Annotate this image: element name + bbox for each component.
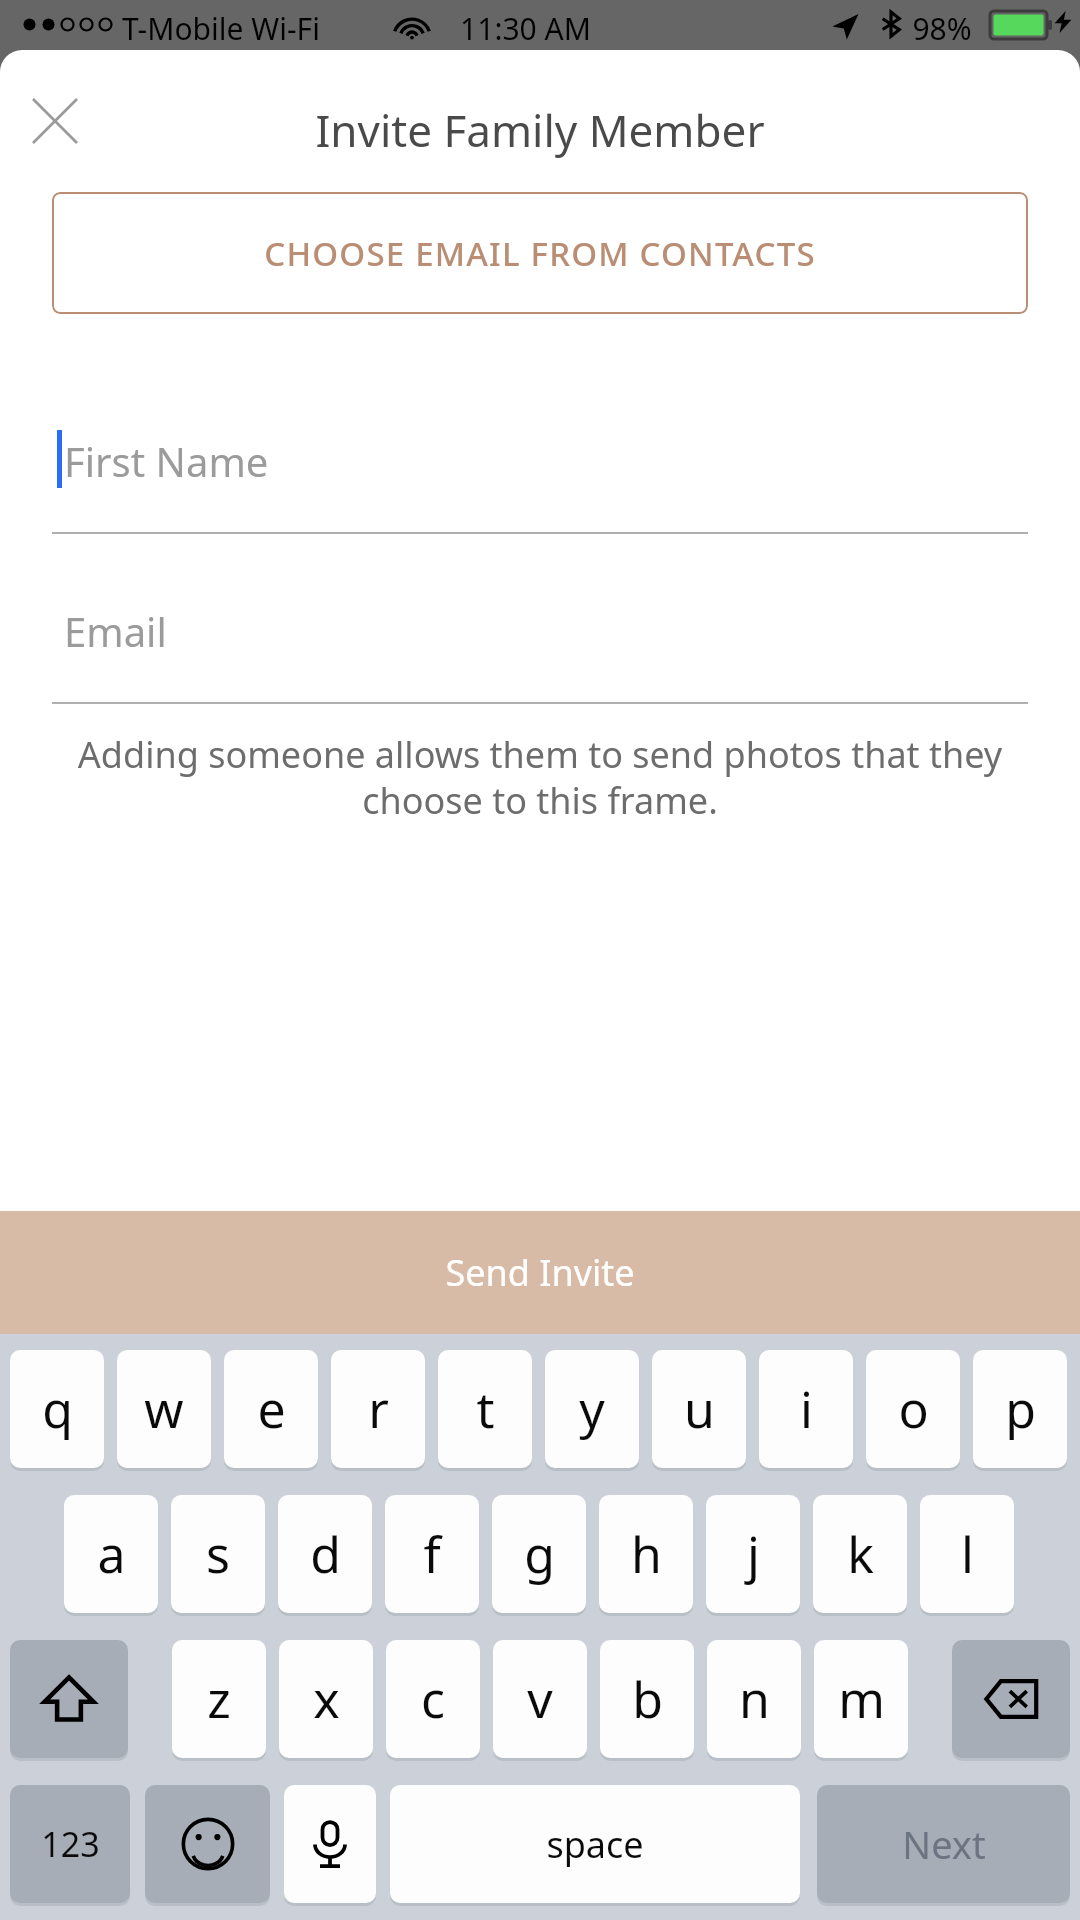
staticText: Invite Family Member xyxy=(315,100,765,160)
staticText: j xyxy=(747,1520,760,1588)
staticText: T-Mobile Wi-Fi xyxy=(122,8,320,49)
button[interactable]: z xyxy=(172,1640,266,1758)
staticText: r xyxy=(368,1375,389,1443)
staticText: e xyxy=(257,1375,286,1443)
staticText: w xyxy=(144,1375,184,1443)
button[interactable]: o xyxy=(866,1350,960,1468)
staticText: l xyxy=(961,1520,974,1588)
staticText: n xyxy=(739,1665,770,1733)
staticText: Email xyxy=(64,604,167,658)
button[interactable]: First Name xyxy=(52,422,1028,534)
staticText: d xyxy=(310,1520,341,1588)
button[interactable]: f xyxy=(385,1495,479,1613)
button[interactable]: CHOOSE EMAIL FROM CONTACTS xyxy=(52,192,1028,314)
staticText: a xyxy=(97,1520,126,1588)
button[interactable]: n xyxy=(707,1640,801,1758)
button[interactable]: l xyxy=(920,1495,1014,1613)
button[interactable]: y xyxy=(545,1350,639,1468)
staticText: x xyxy=(313,1665,340,1733)
button[interactable]: t xyxy=(438,1350,532,1468)
staticText: space xyxy=(546,1820,644,1869)
staticText: t xyxy=(476,1375,495,1443)
staticText: m xyxy=(838,1665,885,1733)
button[interactable]: Voice input xyxy=(284,1785,376,1903)
staticText: 123 xyxy=(41,1821,100,1867)
staticText: k xyxy=(847,1520,874,1588)
button[interactable]: space xyxy=(390,1785,800,1903)
staticText: g xyxy=(524,1520,555,1588)
button[interactable]: w xyxy=(117,1350,211,1468)
staticText: 11:30 AM xyxy=(460,8,591,49)
staticText: Next xyxy=(902,1818,986,1870)
button[interactable]: s xyxy=(171,1495,265,1613)
staticText: i xyxy=(800,1375,813,1443)
button[interactable]: k xyxy=(813,1495,907,1613)
button[interactable]: b xyxy=(600,1640,694,1758)
button[interactable]: Send Invite xyxy=(0,1211,1080,1334)
staticText: CHOOSE EMAIL FROM CONTACTS xyxy=(264,231,816,276)
staticText: h xyxy=(631,1520,662,1588)
staticText: u xyxy=(684,1375,715,1443)
staticText: z xyxy=(207,1665,231,1733)
button[interactable]: Close xyxy=(14,80,96,162)
button[interactable]: j xyxy=(706,1495,800,1613)
button[interactable]: d xyxy=(278,1495,372,1613)
staticText: s xyxy=(206,1520,230,1588)
staticText: v xyxy=(527,1665,553,1733)
staticText: y xyxy=(579,1375,605,1443)
staticText: f xyxy=(423,1520,441,1588)
button[interactable]: q xyxy=(10,1350,104,1468)
button[interactable]: a xyxy=(64,1495,158,1613)
button[interactable]: v xyxy=(493,1640,587,1758)
staticText: o xyxy=(898,1375,929,1443)
staticText: 98% xyxy=(912,8,972,49)
button[interactable]: h xyxy=(599,1495,693,1613)
staticText: c xyxy=(421,1665,445,1733)
staticText: First Name xyxy=(64,434,269,488)
button[interactable]: g xyxy=(492,1495,586,1613)
button[interactable]: Email xyxy=(52,592,1028,704)
button[interactable]: Next xyxy=(817,1785,1070,1903)
button[interactable]: e xyxy=(224,1350,318,1468)
staticText: b xyxy=(632,1665,663,1733)
staticText: Send Invite xyxy=(445,1248,635,1297)
button[interactable]: 123 xyxy=(10,1785,130,1903)
button[interactable]: Shift xyxy=(10,1640,128,1758)
button[interactable]: Emoji xyxy=(145,1785,270,1903)
button[interactable]: i xyxy=(759,1350,853,1468)
button[interactable]: c xyxy=(386,1640,480,1758)
staticText: p xyxy=(1005,1375,1036,1443)
staticText: Adding someone allows them to send photo… xyxy=(70,730,1010,825)
button[interactable]: p xyxy=(973,1350,1067,1468)
button[interactable]: Backspace xyxy=(952,1640,1070,1758)
button[interactable]: u xyxy=(652,1350,746,1468)
button[interactable]: x xyxy=(279,1640,373,1758)
button[interactable]: m xyxy=(814,1640,908,1758)
button[interactable]: r xyxy=(331,1350,425,1468)
staticText: q xyxy=(42,1375,73,1443)
